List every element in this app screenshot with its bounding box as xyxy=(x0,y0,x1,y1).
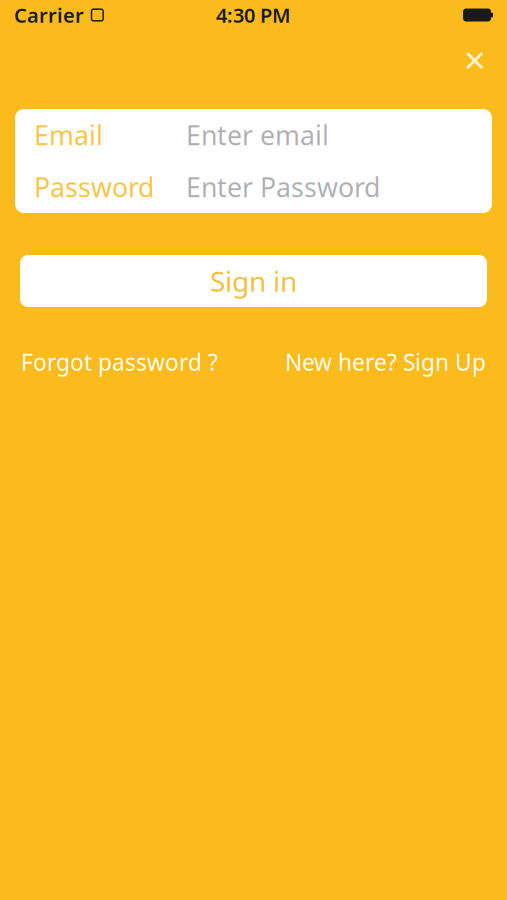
staticText: Enter Password xyxy=(186,169,380,205)
button[interactable]: Sign in xyxy=(20,255,487,307)
staticText: Carrier xyxy=(14,2,84,28)
staticText: Email xyxy=(34,117,103,153)
button[interactable]: Close xyxy=(453,39,497,83)
staticText: 4:30 PM xyxy=(216,2,291,28)
button[interactable]: New here? Sign Up xyxy=(285,341,486,383)
staticText: Password xyxy=(34,169,154,205)
staticText: Sign in xyxy=(210,262,297,300)
staticText: Forgot password ? xyxy=(21,347,218,377)
staticText: New here? Sign Up xyxy=(285,347,486,377)
staticText: Enter email xyxy=(186,117,329,153)
staticText: ✕ xyxy=(462,44,487,78)
button[interactable]: Forgot password ? xyxy=(21,341,218,383)
